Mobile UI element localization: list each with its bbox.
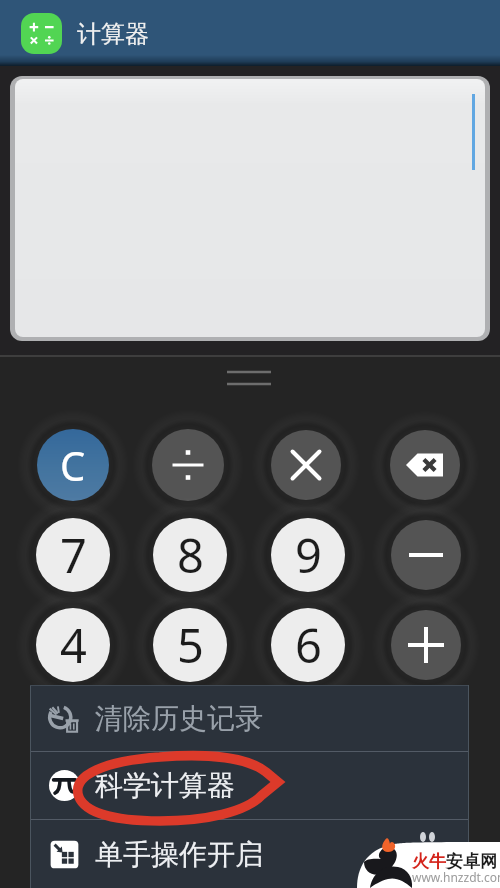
button[interactable]: 7 (36, 518, 110, 592)
staticText: 4 (60, 613, 87, 677)
staticText: 科学计算器 (95, 768, 235, 803)
staticText: 火牛 (412, 851, 446, 872)
button[interactable]: C (37, 429, 109, 501)
button[interactable]: ÷ (152, 429, 224, 501)
staticText: 5 (177, 613, 204, 677)
button[interactable]: + (391, 610, 461, 680)
button[interactable]: 9 (271, 518, 345, 592)
button[interactable]: 单手操作开启 (30, 820, 469, 888)
staticText: 9 (295, 523, 322, 587)
button[interactable]: 8 (153, 518, 227, 592)
button[interactable]: 6 (271, 608, 345, 682)
button[interactable]: − (391, 520, 461, 590)
button[interactable]: 5 (153, 608, 227, 682)
button[interactable]: ⌫ (390, 430, 460, 500)
staticText: 6 (295, 613, 322, 677)
button[interactable]: 科学计算器 (30, 752, 469, 819)
staticText: 7 (60, 523, 87, 587)
button[interactable]: 清除历史记录 (30, 685, 469, 751)
staticText: C (60, 438, 86, 492)
staticText: 计算器 (77, 19, 149, 49)
staticText: 8 (177, 523, 204, 587)
staticText: 安卓网 (446, 851, 497, 872)
button[interactable]: Calculator (21, 13, 62, 54)
button[interactable] (15, 79, 485, 337)
staticText: 单手操作开启 (95, 837, 263, 872)
staticText: www.hnzzdt.com (412, 869, 500, 885)
button[interactable]: × (271, 430, 341, 500)
button[interactable]: 4 (36, 608, 110, 682)
staticText: 清除历史记录 (95, 701, 263, 736)
